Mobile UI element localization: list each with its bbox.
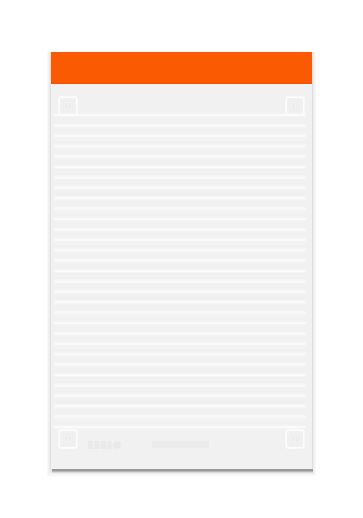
- button[interactable]: Top left marker: [58, 96, 78, 116]
- button[interactable]: Brand logo: [88, 440, 122, 450]
- button[interactable]: Bottom right marker: [285, 429, 305, 449]
- button[interactable]: Top right marker: [285, 96, 305, 116]
- button[interactable]: Bottom left marker: [58, 429, 78, 449]
